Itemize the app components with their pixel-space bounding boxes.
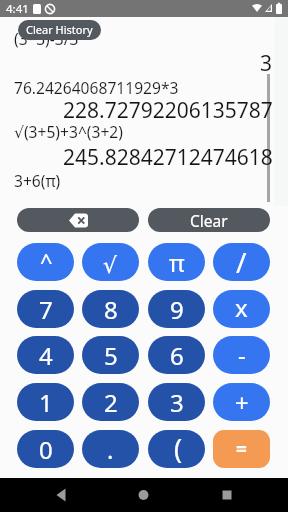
- button[interactable]: 4: [17, 336, 74, 374]
- staticText: 76.24264068711929*3: [14, 77, 179, 98]
- button[interactable]: 9: [148, 290, 205, 328]
- staticText: 6: [170, 339, 184, 372]
- staticText: √: [103, 253, 118, 279]
- staticText: (3*3)-3/3: [14, 28, 79, 49]
- staticText: 9: [170, 293, 184, 326]
- button[interactable]: Clear: [148, 208, 270, 232]
- button[interactable]: /: [213, 243, 270, 281]
- staticText: π: [169, 246, 185, 279]
- staticText: Clear: [190, 210, 228, 231]
- staticText: 1: [39, 386, 53, 419]
- staticText: 4:41: [6, 1, 29, 17]
- button[interactable]: =: [213, 430, 270, 468]
- staticText: √(3+5)+3^(3+2): [14, 121, 123, 142]
- button[interactable]: 2: [82, 383, 139, 421]
- staticText: 245.82842712474618: [63, 143, 273, 172]
- staticText: 3+6(π): [14, 170, 61, 191]
- button[interactable]: -: [213, 336, 270, 374]
- staticText: 2: [104, 386, 118, 419]
- button[interactable]: [17, 208, 139, 232]
- button[interactable]: 6: [148, 336, 205, 374]
- staticText: 228.72792206135787: [63, 96, 273, 125]
- staticText: -: [238, 338, 246, 371]
- button[interactable]: [178, 478, 244, 512]
- button[interactable]: 8: [82, 290, 139, 328]
- staticText: 3: [170, 386, 184, 419]
- staticText: x: [235, 291, 248, 324]
- button[interactable]: [111, 478, 177, 512]
- staticText: /: [236, 243, 247, 281]
- staticText: 7: [39, 293, 53, 326]
- staticText: 4: [39, 339, 53, 372]
- button[interactable]: Clear History: [18, 20, 101, 40]
- button[interactable]: 3: [148, 383, 205, 421]
- button[interactable]: x: [213, 290, 270, 328]
- staticText: (: [174, 430, 183, 467]
- staticText: Clear History: [26, 22, 93, 37]
- button[interactable]: √: [82, 243, 139, 281]
- button[interactable]: π: [148, 243, 205, 281]
- staticText: +: [235, 386, 249, 419]
- staticText: .: [107, 433, 114, 466]
- staticText: 3: [260, 49, 273, 78]
- staticText: 5: [104, 339, 118, 372]
- button[interactable]: .: [82, 430, 139, 468]
- button[interactable]: [44, 478, 110, 512]
- button[interactable]: 0: [17, 430, 74, 468]
- button[interactable]: 7: [17, 290, 74, 328]
- button[interactable]: (: [148, 430, 205, 468]
- button[interactable]: ^: [17, 243, 74, 281]
- staticText: =: [236, 436, 247, 462]
- button[interactable]: +: [213, 383, 270, 421]
- button[interactable]: 1: [17, 383, 74, 421]
- staticText: 0: [39, 433, 53, 466]
- staticText: 8: [104, 293, 118, 326]
- button[interactable]: 5: [82, 336, 139, 374]
- staticText: ^: [40, 246, 53, 276]
